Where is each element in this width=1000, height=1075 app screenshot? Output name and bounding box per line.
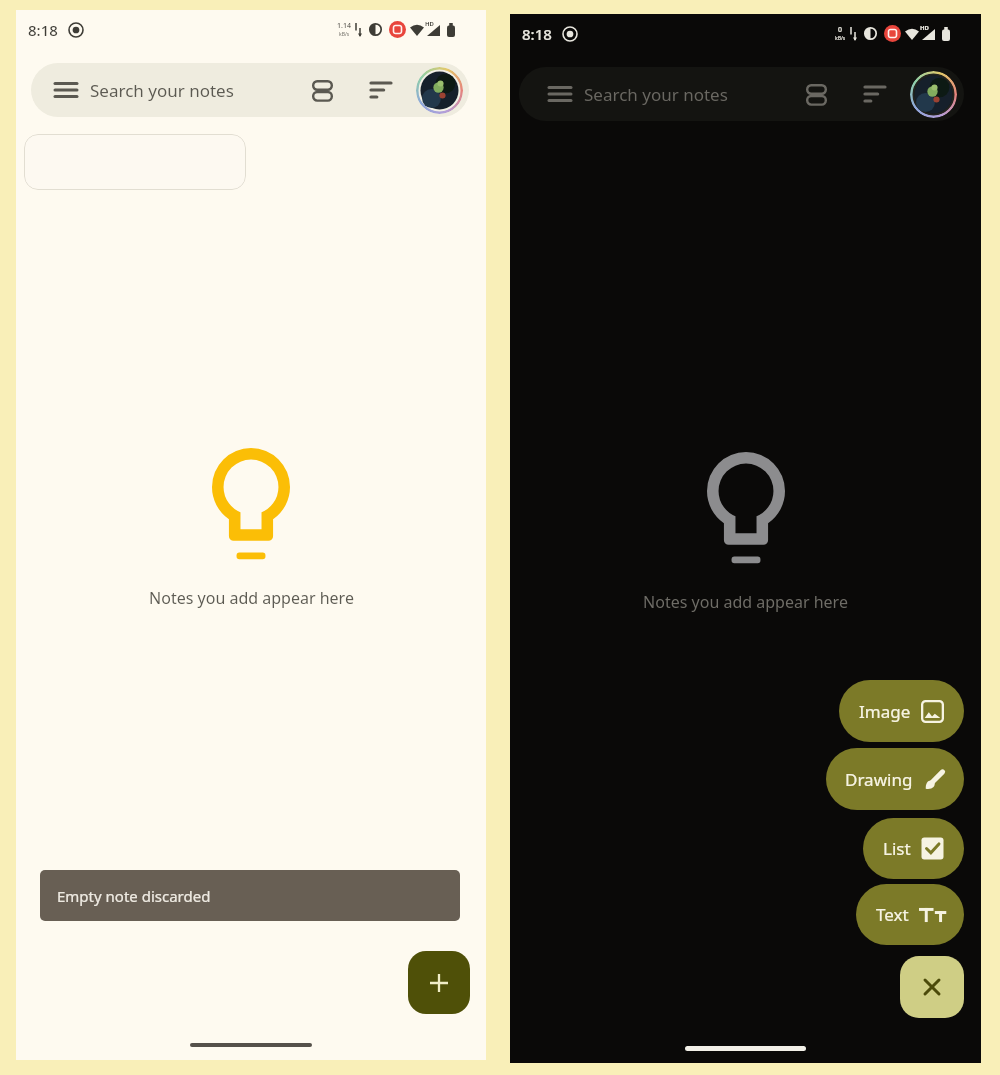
staticText: Notes you add appear here (149, 587, 354, 609)
staticText: Drawing (845, 768, 913, 791)
button[interactable]: Create new note (408, 951, 470, 1014)
button[interactable] (24, 134, 246, 190)
staticText: 8:18 (28, 20, 58, 40)
button[interactable]: Sort (370, 81, 392, 99)
staticText: HD (920, 24, 929, 32)
button[interactable]: Drawing (826, 748, 964, 810)
staticText: 0 (838, 25, 843, 35)
staticText: Search your notes (90, 79, 234, 102)
staticText: Notes you add appear here (643, 591, 848, 613)
button[interactable]: Menu (31, 63, 469, 117)
button[interactable]: Image (839, 680, 964, 742)
button[interactable]: Text (856, 884, 964, 945)
button[interactable]: List (863, 818, 964, 879)
staticText: kB/s (835, 35, 846, 42)
button[interactable]: Menu (549, 86, 571, 102)
button[interactable]: Empty note discarded (40, 870, 460, 921)
staticText: Search your notes (584, 83, 728, 106)
staticText: HD (425, 20, 434, 28)
staticText: 1.14 (337, 21, 351, 31)
button[interactable]: Sort (864, 85, 886, 103)
staticText: Empty note discarded (57, 886, 211, 906)
button[interactable]: Account (910, 71, 957, 118)
staticText: 8:18 (522, 24, 552, 44)
button[interactable]: Menu (519, 67, 964, 121)
button[interactable]: Toggle view (806, 84, 827, 105)
staticText: List (883, 837, 911, 860)
button[interactable]: Toggle view (312, 80, 333, 101)
staticText: Text (876, 903, 909, 926)
button[interactable]: Account (416, 67, 463, 114)
button[interactable]: Menu (55, 82, 77, 98)
staticText: Image (859, 700, 911, 723)
staticText: kB/s (339, 31, 350, 38)
button[interactable]: Close (900, 956, 964, 1018)
